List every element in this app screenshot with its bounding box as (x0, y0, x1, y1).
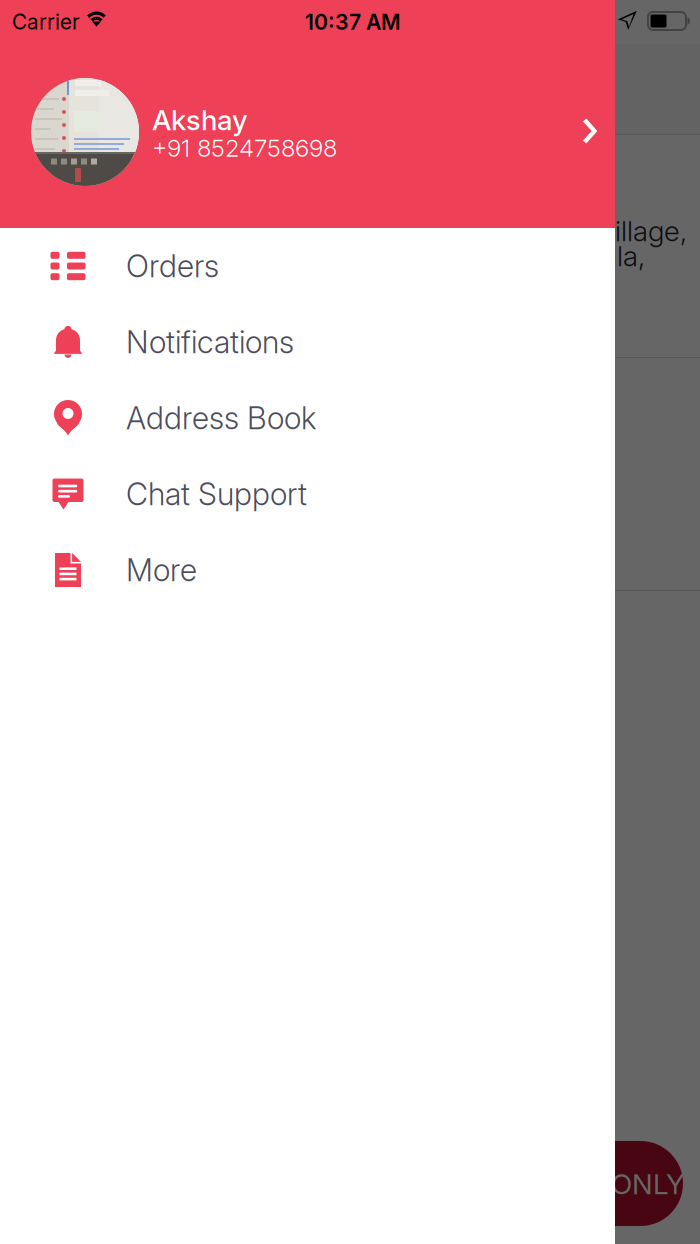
button[interactable]: Notifications (0, 304, 615, 380)
button[interactable]: Chat Support (0, 456, 615, 532)
button[interactable]: More (0, 532, 615, 608)
button[interactable]: Address Book (0, 380, 615, 456)
staticText: Chat Support (126, 475, 307, 512)
staticText: Akshay (152, 103, 248, 137)
staticText: More (126, 551, 197, 588)
staticText: Notifications (126, 323, 294, 360)
staticText: Badi Kothi, Kufri village, (396, 214, 687, 248)
staticText: 10:37 AM (305, 9, 401, 35)
staticText: Orders (126, 247, 219, 284)
staticText: Shimla, (554, 239, 645, 273)
staticText: PAY CASH ONLY (467, 1167, 685, 1201)
button[interactable] (0, 44, 615, 228)
staticText: Address Book (126, 399, 316, 436)
staticText: +91 8524758698 (152, 133, 337, 162)
staticText: Carrier (12, 9, 80, 34)
button[interactable]: Orders (0, 228, 615, 304)
